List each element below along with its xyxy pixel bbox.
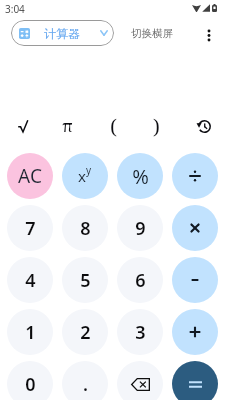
- button[interactable]: 5: [62, 257, 108, 303]
- staticText: 1: [25, 320, 36, 345]
- button[interactable]: π: [56, 112, 84, 140]
- button[interactable]: 6: [117, 257, 163, 303]
- staticText: 3:04: [5, 2, 25, 16]
- staticText: 5: [80, 268, 91, 293]
- staticText: 2: [80, 320, 91, 345]
- button[interactable]: Minus: [172, 257, 218, 303]
- staticText: 9: [135, 216, 146, 241]
- staticText: %: [132, 163, 149, 190]
- button[interactable]: 8: [62, 205, 108, 251]
- button[interactable]: 2: [62, 309, 108, 355]
- button[interactable]: .: [62, 361, 108, 400]
- staticText: 0: [25, 372, 36, 397]
- button[interactable]: Backspace: [117, 361, 163, 400]
- button[interactable]: Divide: [172, 153, 218, 199]
- button[interactable]: 0: [7, 361, 53, 400]
- button[interactable]: Equals: [172, 361, 218, 400]
- staticText: 3: [135, 320, 146, 345]
- button[interactable]: History: [183, 112, 211, 140]
- button[interactable]: Multiply: [172, 205, 218, 251]
- button[interactable]: 7: [7, 205, 53, 251]
- button[interactable]: Plus: [172, 309, 218, 355]
- button[interactable]: More options: [198, 24, 220, 46]
- staticText: .: [83, 372, 88, 397]
- staticText: ): [153, 113, 160, 140]
- button[interactable]: ): [141, 112, 169, 140]
- button[interactable]: %: [117, 153, 163, 199]
- staticText: 8: [80, 216, 91, 241]
- button[interactable]: 4: [7, 257, 53, 303]
- button[interactable]: 切换横屏: [126, 24, 178, 43]
- staticText: y: [86, 163, 92, 177]
- button[interactable]: AC: [7, 153, 53, 199]
- button[interactable]: 9: [117, 205, 163, 251]
- staticText: (: [110, 113, 117, 140]
- button[interactable]: Square root: [14, 112, 42, 140]
- staticText: x: [78, 166, 86, 186]
- staticText: 7: [25, 216, 36, 241]
- button[interactable]: 1: [7, 309, 53, 355]
- staticText: π: [62, 115, 73, 137]
- button[interactable]: (: [99, 112, 127, 140]
- staticText: 6: [135, 268, 146, 293]
- staticText: AC: [18, 163, 42, 189]
- staticText: 计算器: [44, 26, 80, 41]
- staticText: 4: [25, 268, 36, 293]
- button[interactable]: 3: [117, 309, 163, 355]
- button[interactable]: x: [62, 153, 108, 199]
- button[interactable]: 计算器: [11, 20, 114, 46]
